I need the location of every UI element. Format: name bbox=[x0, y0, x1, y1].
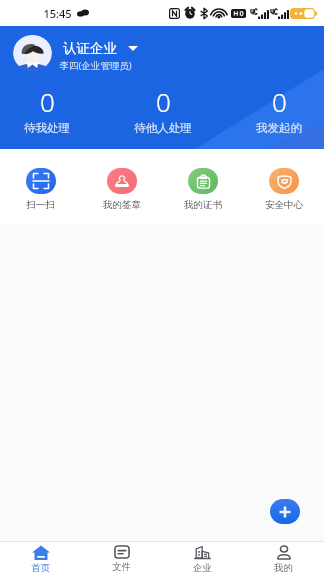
button[interactable]: 文件 bbox=[81, 542, 162, 576]
button[interactable]: 扫一扫 bbox=[0, 168, 81, 211]
staticText: 认证企业 bbox=[63, 40, 117, 57]
button[interactable]: 我的证书 bbox=[162, 168, 243, 211]
staticText: 安全中心 bbox=[265, 199, 303, 211]
staticText: 待我处理 bbox=[24, 121, 70, 135]
staticText: 首页 bbox=[31, 562, 50, 574]
button[interactable]: 新建 bbox=[270, 499, 300, 524]
button[interactable]: 企业 bbox=[162, 542, 243, 576]
button[interactable]: 头像 bbox=[13, 35, 52, 71]
staticText: 我的签章 bbox=[103, 199, 141, 211]
button[interactable]: 我的签章 bbox=[81, 168, 162, 211]
staticText: 0 bbox=[40, 84, 55, 119]
button[interactable]: 0 bbox=[105, 84, 221, 135]
button[interactable]: 0 bbox=[0, 84, 105, 135]
staticText: 我发起的 bbox=[256, 121, 302, 135]
staticText: 我的证书 bbox=[184, 199, 222, 211]
staticText: 0 bbox=[156, 84, 171, 119]
button[interactable]: 我的 bbox=[243, 542, 324, 576]
button[interactable]: 首页 bbox=[0, 542, 81, 576]
staticText: 0 bbox=[272, 84, 287, 119]
button[interactable]: 0 bbox=[221, 84, 324, 135]
staticText: 我的 bbox=[274, 562, 293, 574]
staticText: 待他人处理 bbox=[134, 121, 192, 135]
button[interactable]: 安全中心 bbox=[243, 168, 324, 211]
staticText: 李四(企业管理员) bbox=[59, 59, 132, 72]
staticText: 文件 bbox=[112, 561, 131, 573]
staticText: 扫一扫 bbox=[26, 199, 55, 211]
staticText: 15:45 bbox=[43, 6, 72, 21]
staticText: 企业 bbox=[193, 562, 212, 574]
